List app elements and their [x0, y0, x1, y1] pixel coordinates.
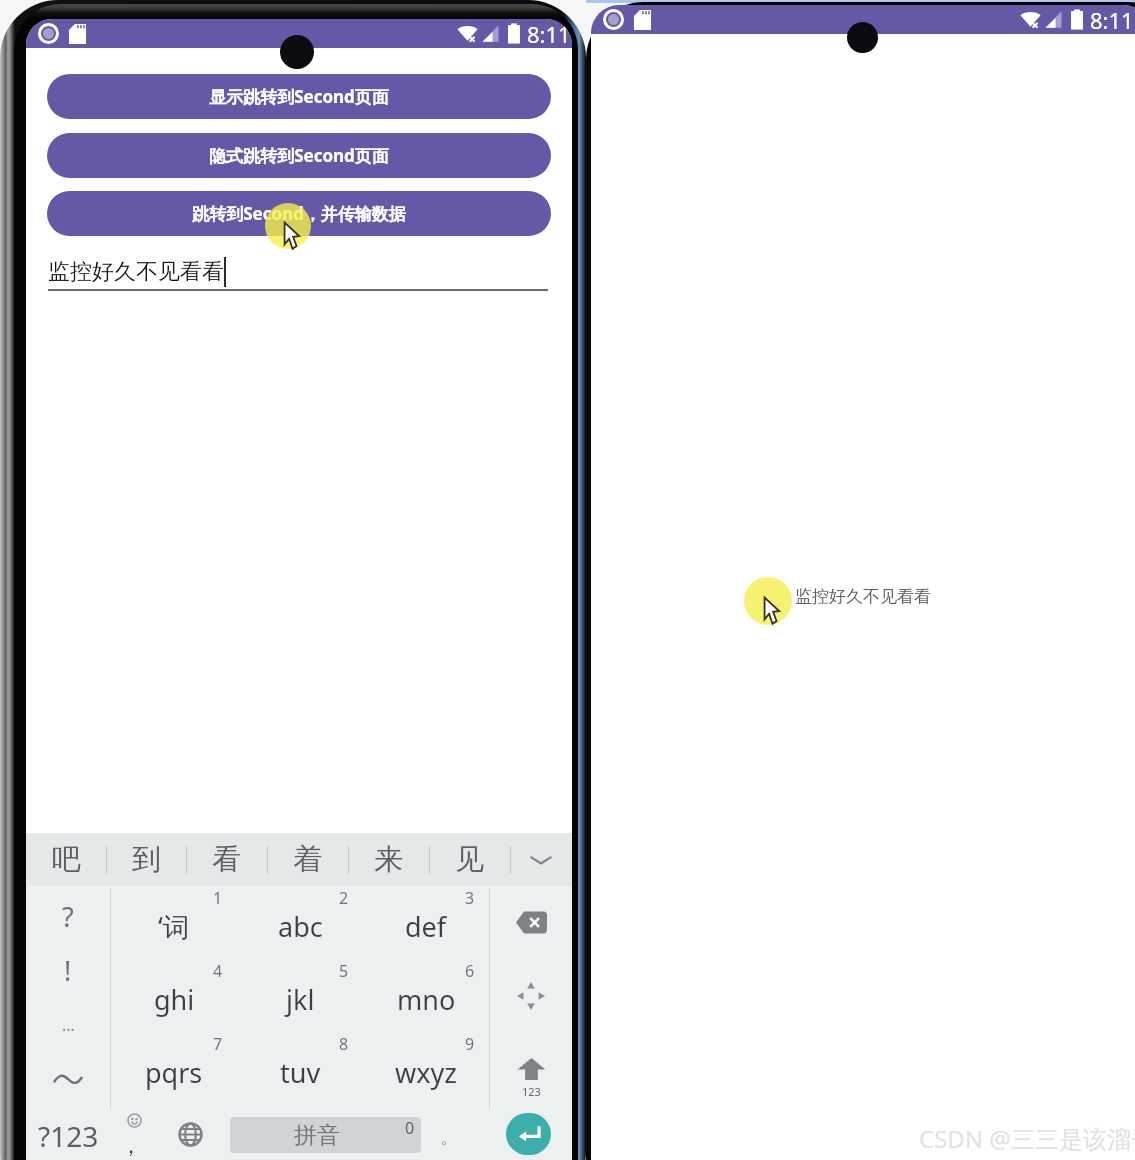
staticText: abc	[278, 908, 323, 945]
staticText: 8:11	[527, 19, 571, 48]
staticText: 看	[212, 841, 241, 878]
button[interactable]: Shift	[490, 1032, 572, 1112]
staticText: 6	[465, 960, 475, 982]
staticText: 显示跳转到Second页面	[209, 85, 389, 108]
staticText: 7	[213, 1033, 223, 1055]
button[interactable]: 看	[186, 833, 267, 886]
button[interactable]: ?	[26, 891, 110, 941]
staticText: jkl	[286, 981, 315, 1018]
button[interactable]: Backspace	[490, 886, 572, 959]
staticText: tuv	[280, 1054, 321, 1091]
staticText: 隐式跳转到Second页面	[209, 144, 389, 167]
button[interactable]: 跳转到Second，并传输数据	[47, 191, 551, 236]
button[interactable]: 7	[111, 1032, 237, 1105]
staticText: ?123	[38, 1117, 99, 1155]
button[interactable]: 1	[111, 886, 237, 959]
staticText: ···	[62, 1019, 75, 1041]
button[interactable]: 3	[363, 886, 489, 959]
button[interactable]: Switch language	[164, 1107, 230, 1160]
button[interactable]: 吧	[26, 833, 106, 886]
staticText: 8:11	[1090, 5, 1134, 34]
staticText: wxyz	[395, 1054, 457, 1091]
staticText: 。	[441, 1128, 457, 1148]
staticText: 来	[374, 841, 403, 878]
button[interactable]: 着	[267, 833, 348, 886]
staticText: CSDN @三三是该溜子	[919, 1122, 1135, 1155]
button[interactable]: 到	[106, 833, 186, 886]
button[interactable]	[26, 1055, 110, 1105]
button[interactable]: 8	[237, 1032, 363, 1105]
button[interactable]: 显示跳转到Second页面	[47, 74, 551, 119]
button[interactable]: !	[26, 945, 110, 995]
button[interactable]: 见	[429, 833, 510, 886]
staticText: 3	[465, 887, 475, 909]
staticText: 1	[213, 887, 223, 909]
staticText: 5	[339, 960, 349, 982]
button[interactable]: 6	[363, 959, 489, 1032]
staticText: 9	[465, 1033, 475, 1055]
button[interactable]: Move cursor	[490, 959, 572, 1032]
button[interactable]: 来	[348, 833, 429, 886]
staticText: 监控好久不见看看	[795, 586, 931, 607]
staticText: 0	[405, 1117, 415, 1139]
staticText: ?	[62, 898, 74, 935]
button[interactable]: 4	[111, 959, 237, 1032]
staticText: 8	[339, 1033, 349, 1055]
button[interactable]: Enter	[506, 1113, 551, 1155]
staticText: 着	[293, 841, 322, 878]
staticText: 吧	[52, 841, 81, 878]
button[interactable]: ，	[104, 1107, 164, 1160]
button[interactable]: 拼音	[230, 1117, 421, 1153]
staticText: 拼音	[294, 1121, 340, 1150]
staticText: 见	[455, 841, 484, 878]
staticText: 123	[522, 1084, 541, 1099]
staticText: 监控好久不见看看	[48, 258, 224, 286]
staticText: 4	[213, 960, 223, 982]
staticText: 到	[132, 841, 161, 878]
staticText: pqrs	[145, 1054, 203, 1091]
button[interactable]: 5	[237, 959, 363, 1032]
button[interactable]: 9	[363, 1032, 489, 1105]
staticText: def	[405, 908, 447, 945]
button[interactable]: Collapse candidates	[510, 833, 572, 886]
staticText: ghi	[154, 981, 195, 1018]
button[interactable]: ···	[26, 1005, 110, 1055]
button[interactable]: 隐式跳转到Second页面	[47, 133, 551, 178]
staticText: mno	[397, 981, 456, 1018]
staticText: 跳转到Second，并传输数据	[192, 202, 406, 225]
staticText: !	[64, 952, 72, 989]
button[interactable]: 2	[237, 886, 363, 959]
staticText: ‘词	[158, 908, 190, 945]
staticText: ，	[120, 1132, 142, 1160]
button[interactable]: 。	[421, 1107, 489, 1160]
staticText: 2	[339, 887, 349, 909]
button[interactable]: ?123	[26, 1111, 110, 1160]
